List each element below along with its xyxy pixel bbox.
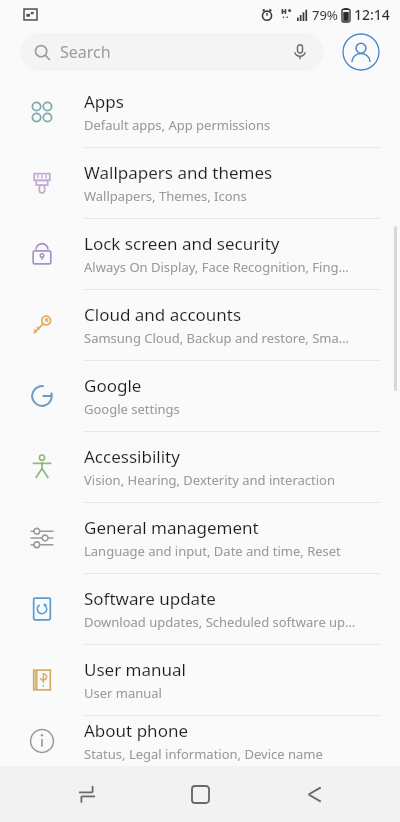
staticText: User manual — [84, 658, 186, 681]
button[interactable]: Wallpapers and themes — [0, 148, 400, 218]
staticText: User manual — [84, 684, 162, 702]
staticText: Search — [60, 41, 111, 63]
button[interactable]: General management — [0, 503, 400, 573]
staticText: Cloud and accounts — [84, 303, 242, 326]
staticText: 79% — [312, 6, 338, 24]
staticText: Vision, Hearing, Dexterity and interacti… — [84, 471, 335, 489]
button[interactable]: Recent apps — [60, 767, 114, 821]
button[interactable]: Back — [287, 767, 341, 821]
staticText: Google — [84, 374, 142, 397]
staticText: General management — [84, 516, 259, 539]
staticText: Apps — [84, 90, 124, 113]
staticText: Samsung Cloud, Backup and restore, Sma… — [84, 329, 350, 347]
staticText: Wallpapers and themes — [84, 161, 273, 184]
button[interactable]: Voice search — [290, 42, 310, 62]
button[interactable]: Accessibility — [0, 432, 400, 502]
staticText: Always On Display, Face Recognition, Fin… — [84, 258, 349, 276]
staticText: Google settings — [84, 400, 180, 418]
button[interactable]: Account — [342, 33, 380, 71]
button[interactable]: Search — [20, 33, 324, 71]
staticText: 12:14 — [354, 5, 390, 24]
staticText: Language and input, Date and time, Reset — [84, 542, 341, 560]
staticText: Download updates, Scheduled software up… — [84, 613, 356, 631]
staticText: Default apps, App permissions — [84, 116, 271, 134]
button[interactable]: About phone — [0, 716, 400, 766]
staticText: Software update — [84, 587, 216, 610]
staticText: Lock screen and security — [84, 232, 280, 255]
staticText: About phone — [84, 719, 189, 742]
staticText: Status, Legal information, Device name — [84, 745, 323, 763]
button[interactable]: User manual — [0, 645, 400, 715]
button[interactable]: Home — [173, 767, 227, 821]
staticText: Wallpapers, Themes, Icons — [84, 187, 247, 205]
button[interactable]: Software update — [0, 574, 400, 644]
button[interactable]: Cloud and accounts — [0, 290, 400, 360]
staticText: Accessibility — [84, 445, 180, 468]
button[interactable]: Lock screen and security — [0, 219, 400, 289]
button[interactable]: Apps — [0, 77, 400, 147]
button[interactable]: Google — [0, 361, 400, 431]
